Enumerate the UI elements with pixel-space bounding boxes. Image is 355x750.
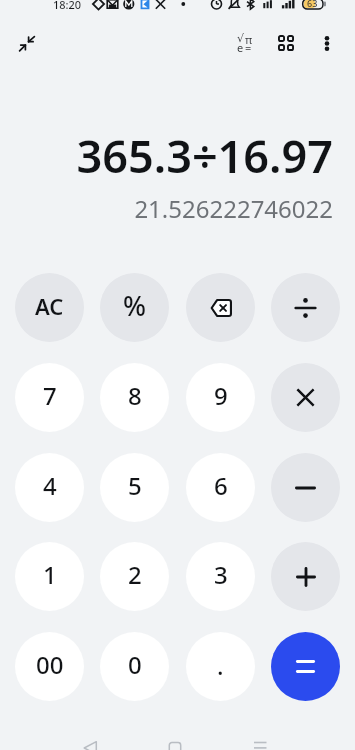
staticText: 00 <box>36 648 64 681</box>
staticText: 63 <box>307 0 318 9</box>
button[interactable]: 1 <box>15 542 84 611</box>
staticText: 6 <box>214 469 228 502</box>
staticText: 3 <box>214 558 228 591</box>
staticText: 4 <box>43 469 57 502</box>
staticText: 8 <box>128 379 142 412</box>
button[interactable]: 6 <box>186 453 255 522</box>
staticText: 2 <box>128 558 142 591</box>
button[interactable]: Minus <box>271 453 340 522</box>
button[interactable]: 4 <box>15 453 84 522</box>
button[interactable]: 9 <box>186 363 255 432</box>
staticText: . <box>217 649 224 682</box>
button[interactable]: Backspace <box>186 273 255 342</box>
button[interactable]: More options <box>305 21 349 65</box>
staticText: 7 <box>43 379 57 412</box>
button[interactable]: Equals <box>271 632 340 701</box>
button[interactable]: Plus <box>271 542 340 611</box>
button[interactable]: 7 <box>15 363 84 432</box>
staticText: 21.526222746022 <box>134 192 333 225</box>
staticText: 0 <box>128 648 142 681</box>
button[interactable]: Divide <box>271 273 340 342</box>
staticText: e <box>237 40 244 55</box>
button[interactable]: 8 <box>100 363 169 432</box>
button[interactable]: Back <box>68 728 112 750</box>
button[interactable]: . <box>186 632 255 701</box>
button[interactable]: 00 <box>15 632 84 701</box>
staticText: % <box>123 287 147 324</box>
staticText: √ <box>237 32 245 45</box>
staticText: 9 <box>214 379 228 412</box>
button[interactable]: Scientific mode <box>223 21 267 65</box>
button[interactable]: Multiply <box>271 363 340 432</box>
button[interactable]: 3 <box>186 542 255 611</box>
button[interactable]: History <box>264 21 308 65</box>
button[interactable]: % <box>100 273 169 342</box>
staticText: 18:20 <box>53 0 82 11</box>
staticText: = <box>245 40 252 55</box>
button[interactable]: Recent apps <box>238 728 282 750</box>
staticText: 1 <box>43 558 57 591</box>
staticText: 365.3÷16.97 <box>76 125 333 186</box>
button[interactable]: Exit fullscreen <box>5 22 49 66</box>
staticText: π <box>245 32 253 47</box>
staticText: AC <box>35 291 64 321</box>
button[interactable]: 0 <box>100 632 169 701</box>
button[interactable]: Home <box>153 728 197 750</box>
button[interactable]: 5 <box>100 453 169 522</box>
button[interactable]: AC <box>15 273 84 342</box>
staticText: 5 <box>128 469 142 502</box>
button[interactable]: 2 <box>100 542 169 611</box>
